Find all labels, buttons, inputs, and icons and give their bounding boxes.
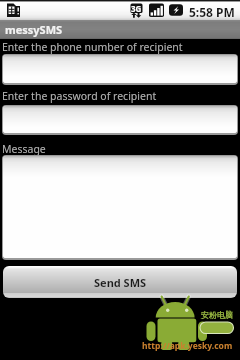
staticText: 安粉电脑 [201,310,233,320]
staticText: 5:58 PM [189,4,235,20]
staticText: Send SMS [94,275,147,290]
button[interactable]: Send SMS [3,266,237,298]
button[interactable]: Phone number of recipient [3,55,237,83]
staticText: Message [2,142,46,156]
button[interactable]: Message [3,156,237,258]
button[interactable]: Password of recipient [3,106,237,133]
staticText: http://apk.yesky.com [142,340,233,352]
staticText: 3G [131,3,142,14]
staticText: messySMS [5,22,63,37]
staticText: Enter the phone number of recipient [2,40,183,54]
staticText: Enter the password of recipient [2,89,157,103]
